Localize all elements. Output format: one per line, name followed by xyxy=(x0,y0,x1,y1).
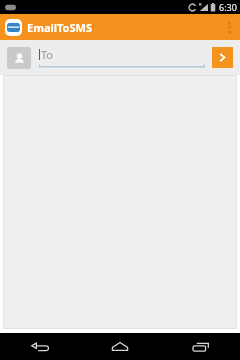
staticText: 6:30 xyxy=(219,1,237,13)
button[interactable]: Recent apps xyxy=(160,333,240,360)
button[interactable]: To xyxy=(39,40,205,75)
staticText: To xyxy=(41,47,54,62)
button[interactable]: Back xyxy=(0,333,80,360)
button[interactable]: Home xyxy=(80,333,160,360)
button[interactable]: More options xyxy=(218,14,240,40)
button[interactable]: App icon xyxy=(5,19,22,36)
button[interactable]: Pick contact xyxy=(7,47,31,69)
staticText: EmailToSMS xyxy=(27,20,92,35)
button[interactable]: Send xyxy=(212,47,233,68)
